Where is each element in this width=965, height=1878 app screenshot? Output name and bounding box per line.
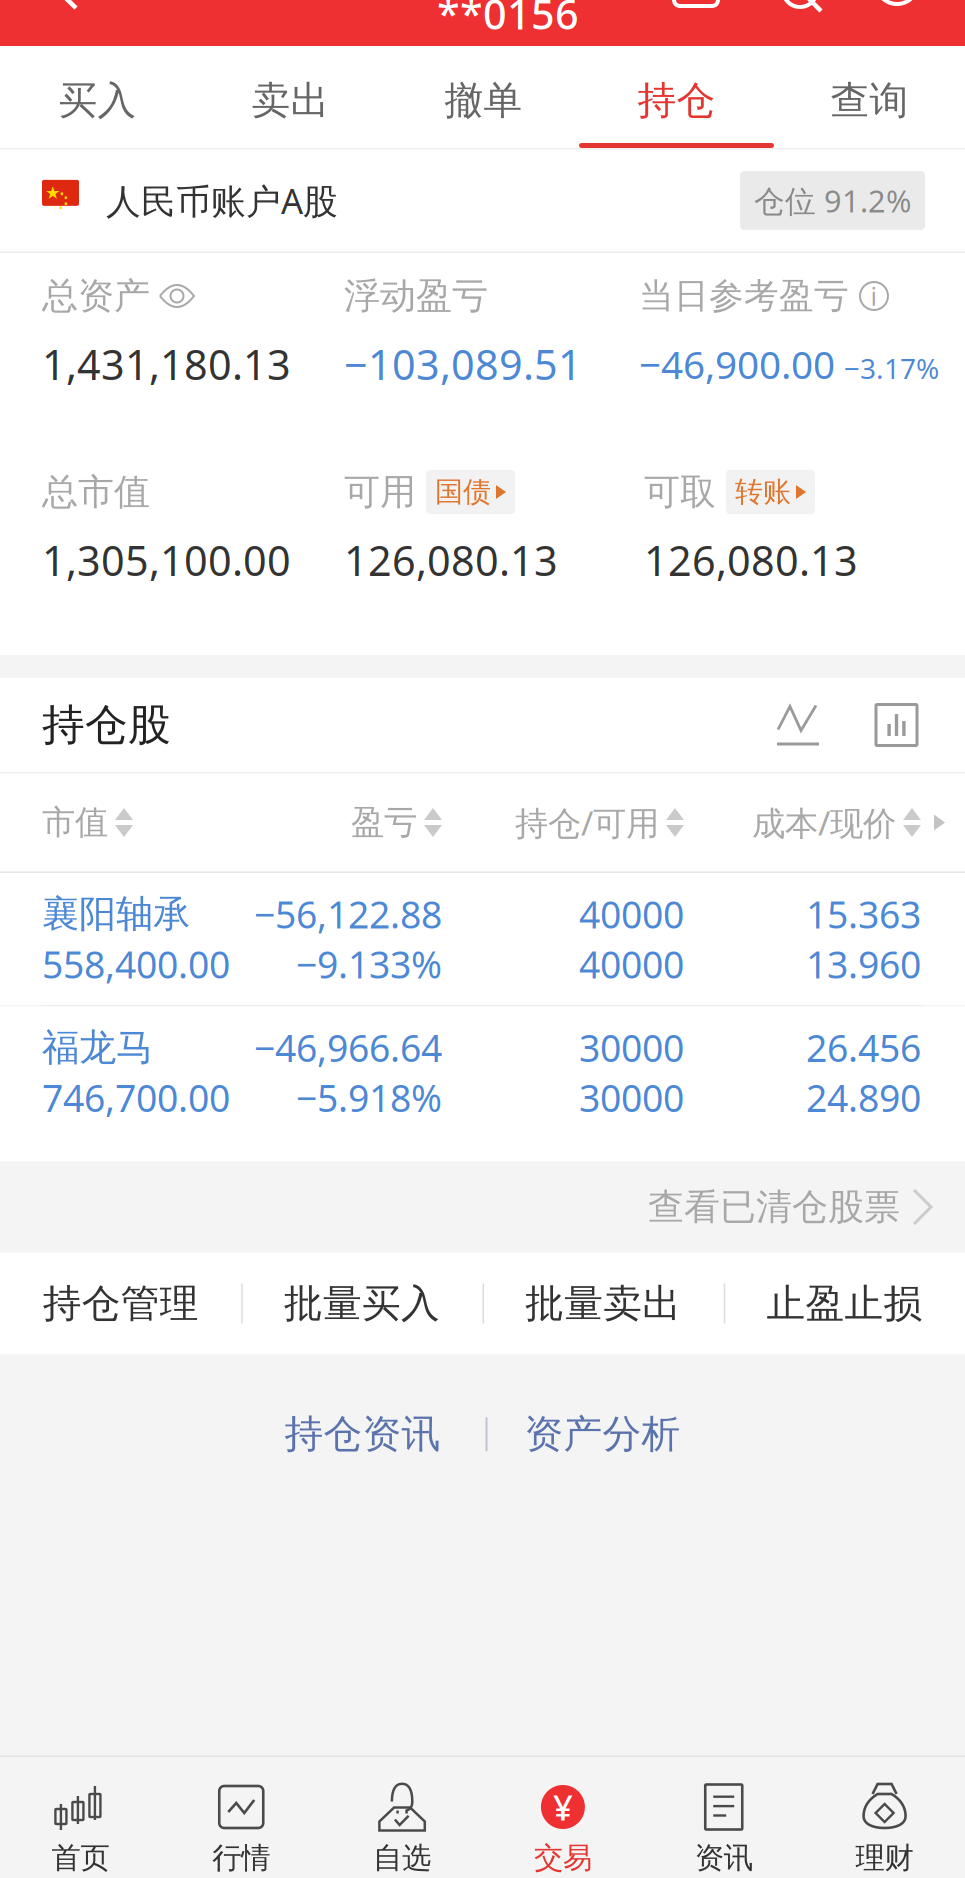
staticText: 仓位 91.2%	[754, 180, 911, 221]
staticText: 13.960	[806, 939, 921, 989]
button[interactable]: 查询	[772, 46, 965, 148]
staticText: 26.456	[806, 1023, 921, 1072]
staticText: −5.918%	[296, 1073, 442, 1122]
staticText: −46,900.00	[639, 338, 835, 390]
button[interactable]: Back	[0, 0, 78, 9]
staticText: 15.363	[806, 889, 921, 939]
button[interactable]: 查看已清仓股票	[0, 1161, 965, 1252]
staticText: 558,400.00	[42, 939, 230, 989]
button[interactable]: ★	[0, 149, 965, 251]
staticText: 浮动盈亏	[344, 274, 488, 318]
staticText: 126,080.13	[644, 533, 858, 587]
staticText: 市值	[42, 802, 108, 843]
button[interactable]: 批量卖出	[482, 1252, 724, 1354]
staticText: ·	[63, 183, 69, 211]
button[interactable]: 批量买入	[241, 1252, 482, 1354]
staticText: i	[870, 279, 877, 313]
button[interactable]: 止盈止损	[724, 1252, 965, 1354]
button[interactable]: 首页	[0, 1757, 161, 1878]
staticText: 总资产	[42, 274, 150, 318]
button[interactable]: Search	[0, 0, 824, 14]
staticText: 持仓/可用	[515, 800, 659, 845]
staticText: 福龙马	[42, 1025, 153, 1070]
staticText: 30000	[579, 1073, 684, 1122]
button[interactable]: 持仓管理	[0, 1252, 241, 1354]
staticText: 资产分析	[524, 1410, 680, 1458]
staticText: 资讯	[695, 1840, 753, 1876]
staticText: 746,700.00	[42, 1073, 230, 1122]
button[interactable]: 卖出	[193, 46, 386, 148]
staticText: 成本/现价	[752, 800, 896, 845]
button[interactable]: Line chart	[777, 704, 819, 745]
staticText: 人民币账户A股	[106, 177, 338, 223]
staticText: −103,089.51	[344, 337, 582, 391]
staticText: 1,305,100.00	[42, 533, 291, 587]
button[interactable]: 持仓	[579, 46, 772, 148]
staticText: 止盈止损	[766, 1280, 922, 1327]
staticText: 总市值	[42, 470, 150, 514]
button[interactable]: 资讯	[643, 1757, 804, 1878]
button[interactable]: 买入	[0, 46, 193, 148]
staticText: 持仓资讯	[284, 1410, 440, 1458]
staticText: 持仓股	[42, 699, 171, 751]
staticText: −46,966.64	[254, 1023, 442, 1072]
staticText: 批量卖出	[525, 1280, 681, 1327]
button[interactable]: 撤单	[386, 46, 579, 148]
staticText: −56,122.88	[254, 889, 442, 939]
button[interactable]: Messages	[0, 0, 718, 6]
staticText: 理财	[856, 1840, 914, 1876]
staticText: ¥	[553, 1784, 573, 1830]
button[interactable]: 襄阳轴承	[0, 873, 965, 1005]
staticText: 持仓管理	[43, 1280, 199, 1327]
button[interactable]: Bar chart	[876, 704, 917, 745]
staticText: 可取	[644, 470, 716, 514]
staticText: 1,431,180.13	[42, 337, 291, 391]
button[interactable]: 资产分析	[487, 1397, 718, 1471]
button[interactable]: 自选	[322, 1757, 482, 1878]
staticText: −9.133%	[296, 939, 442, 989]
staticText: 40000	[579, 889, 684, 939]
staticText: 首页	[51, 1840, 109, 1876]
staticText: ·	[59, 179, 65, 207]
button[interactable]: Account	[0, 0, 918, 4]
button[interactable]: 持仓资讯	[246, 1397, 485, 1471]
staticText: 查看已清仓股票	[648, 1185, 900, 1229]
staticText: 转账	[735, 475, 791, 509]
staticText: 襄阳轴承	[42, 891, 190, 937]
button[interactable]: 福龙马	[0, 1006, 965, 1161]
staticText: 当日参考盈亏	[639, 275, 849, 317]
staticText: ·	[63, 189, 69, 217]
staticText: 交易	[534, 1840, 592, 1876]
staticText: −3.17%	[844, 349, 939, 387]
staticText: 盈亏	[351, 802, 417, 843]
button[interactable]: ¥	[482, 1757, 643, 1878]
staticText: 国债	[435, 475, 491, 509]
staticText: ·	[58, 193, 64, 221]
staticText: 买入	[58, 77, 136, 124]
staticText: 24.890	[806, 1073, 921, 1122]
staticText: 自选	[373, 1840, 431, 1876]
staticText: 批量买入	[284, 1280, 440, 1327]
staticText: 查询	[830, 77, 908, 124]
staticText: ★	[45, 183, 61, 202]
staticText: 可用	[344, 470, 416, 514]
staticText: **0156	[437, 0, 579, 41]
staticText: 40000	[579, 939, 684, 989]
button[interactable]: 行情	[161, 1757, 322, 1878]
button[interactable]: 理财	[804, 1757, 965, 1878]
staticText: 持仓	[637, 77, 715, 124]
staticText: 行情	[212, 1840, 270, 1876]
staticText: 126,080.13	[344, 533, 558, 587]
staticText: 30000	[579, 1023, 684, 1072]
staticText: 撤单	[444, 77, 522, 124]
staticText: 卖出	[251, 77, 329, 124]
